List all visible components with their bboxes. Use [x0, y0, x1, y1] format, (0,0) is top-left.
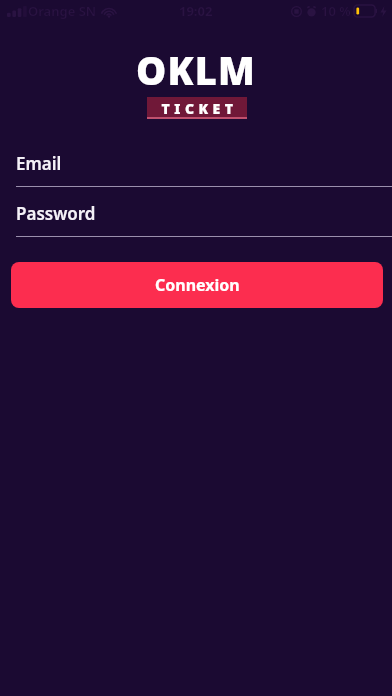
staticText: OKLM [136, 44, 257, 96]
staticText: 19:02 [179, 2, 213, 20]
staticText: Orange SN [28, 2, 97, 20]
staticText: Password [16, 202, 96, 225]
button[interactable]: Connexion [11, 262, 383, 308]
staticText: Connexion [155, 274, 240, 296]
button[interactable]: Email [0, 152, 392, 187]
staticText: Email [16, 152, 62, 175]
button[interactable]: Password [0, 202, 392, 237]
staticText: TICKET [161, 99, 238, 118]
staticText: 10 % [321, 2, 351, 20]
